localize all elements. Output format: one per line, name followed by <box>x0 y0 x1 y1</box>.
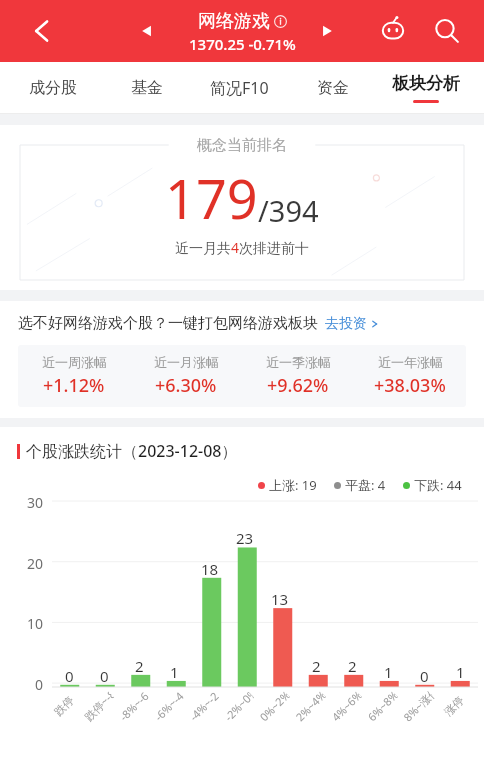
button[interactable]: 基金 <box>100 62 193 114</box>
staticText: 23 <box>236 528 254 548</box>
staticText: 近一月涨幅 <box>154 354 219 370</box>
staticText: 近一年涨幅 <box>378 354 443 370</box>
staticText: 20 <box>27 554 44 573</box>
staticText: 跌停 <box>51 693 77 719</box>
staticText: 简况F10 <box>210 77 269 99</box>
staticText: 179 <box>165 161 258 235</box>
staticText: +9.62% <box>267 373 329 398</box>
button[interactable]: AI assistant <box>376 14 410 48</box>
staticText: 1370.25 -0.71% <box>189 34 296 54</box>
staticText: -2%~0% <box>221 689 256 724</box>
staticText: 2%~4% <box>292 688 328 725</box>
staticText: 平盘: 4 <box>345 476 386 494</box>
staticText: -6%~-4% <box>151 689 186 724</box>
staticText: 1 <box>384 662 393 682</box>
staticText: +1.12% <box>43 373 105 398</box>
staticText: 2 <box>312 656 321 676</box>
staticText: 1 <box>456 662 465 682</box>
staticText: 0 <box>100 666 109 686</box>
staticText: 上涨: 19 <box>269 476 317 494</box>
button[interactable]: Search <box>430 14 464 48</box>
staticText: 近一周涨幅 <box>42 354 107 370</box>
staticText: 资金 <box>317 78 349 98</box>
staticText: 选不好网络游戏个股？一键打包网络游戏板块 <box>18 314 318 333</box>
staticText: 18 <box>201 559 219 579</box>
staticText: 13 <box>271 589 289 609</box>
staticText: 2 <box>135 656 144 676</box>
staticText: 0 <box>35 675 44 694</box>
staticText: 近一月共4次排进前十 <box>175 238 310 257</box>
staticText: +6.30% <box>155 373 217 398</box>
staticText: 0 <box>420 666 429 686</box>
staticText: 个股涨跌统计（2023-12-08） <box>26 440 238 462</box>
staticText: 1 <box>170 662 179 682</box>
staticText: 跌停~-8% <box>81 689 116 724</box>
staticText: 30 <box>27 493 44 512</box>
staticText: 板块分析 <box>392 73 460 94</box>
staticText: 8%~涨停 <box>400 688 436 725</box>
button[interactable]: Previous <box>136 20 158 42</box>
staticText: 概念当前排名 <box>197 136 287 155</box>
staticText: 6%~8% <box>364 688 400 725</box>
staticText: 10 <box>27 614 44 633</box>
button[interactable]: 资金 <box>286 62 379 114</box>
staticText: 近一季涨幅 <box>266 354 331 370</box>
staticText: 成分股 <box>29 78 77 98</box>
staticText: 0%~2% <box>256 688 292 725</box>
staticText: +38.03% <box>374 373 446 398</box>
staticText: -8%~-6% <box>116 689 151 724</box>
button[interactable]: 成分股 <box>6 62 100 114</box>
staticText: 2 <box>348 656 357 676</box>
staticText: 涨停 <box>441 693 467 719</box>
staticText: 去投资 <box>325 315 367 333</box>
staticText: 网络游戏 <box>198 10 270 33</box>
button[interactable]: 板块分析 <box>379 62 472 114</box>
button[interactable]: 简况F10 <box>193 62 286 114</box>
staticText: 下跌: 44 <box>414 476 462 494</box>
staticText: 4%~6% <box>328 688 364 725</box>
staticText: -4%~-2% <box>186 689 221 724</box>
button[interactable]: Back <box>26 14 60 48</box>
staticText: /394 <box>258 191 319 230</box>
staticText: 0 <box>65 666 74 686</box>
button[interactable]: 选不好网络游戏个股？一键打包网络游戏板块 <box>0 314 484 333</box>
staticText: 基金 <box>131 78 163 98</box>
button[interactable]: Next <box>316 20 338 42</box>
